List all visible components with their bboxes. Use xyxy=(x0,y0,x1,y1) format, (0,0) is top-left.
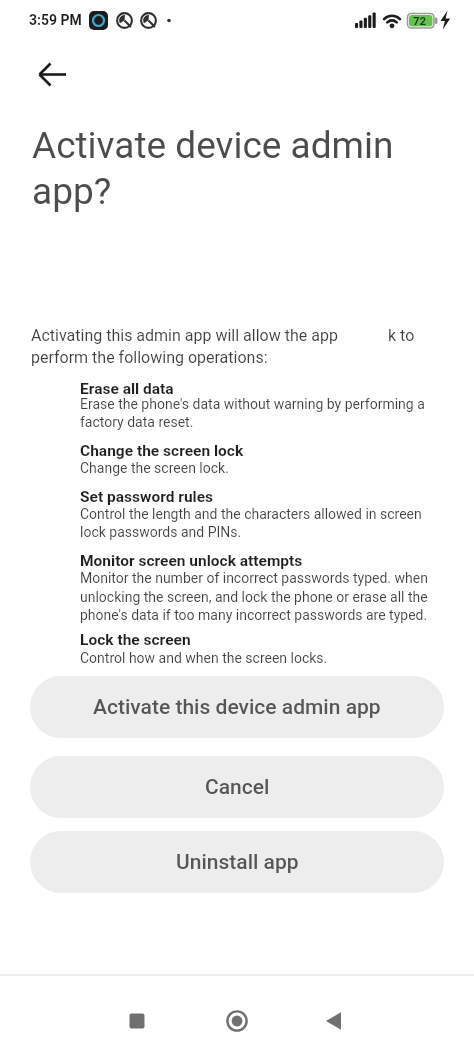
staticText: Erase all data xyxy=(80,380,174,398)
staticText: k to xyxy=(388,326,415,345)
staticText: Control the length and the characters al… xyxy=(80,506,422,541)
staticText: Uninstall app xyxy=(176,850,299,875)
staticText: 72 xyxy=(413,14,427,27)
button[interactable]: Activate this device admin app xyxy=(30,676,444,738)
staticText: Activating this admin app will allow the… xyxy=(31,326,338,345)
staticText: Lock the screen xyxy=(80,631,191,649)
staticText: Change the screen lock. xyxy=(80,460,229,476)
staticText: Set password rules xyxy=(80,488,214,506)
button[interactable] xyxy=(316,1004,350,1038)
staticText: Control how and when the screen locks. xyxy=(80,650,328,666)
staticText: Cancel xyxy=(205,775,270,800)
button[interactable] xyxy=(120,1004,154,1038)
staticText: Activate this device admin app xyxy=(93,695,381,720)
staticText: Activate device admin app? xyxy=(32,124,394,213)
staticText: Change the screen lock xyxy=(80,442,244,460)
staticText: Monitor screen unlock attempts xyxy=(80,552,303,570)
staticText: Monitor the number of incorrect password… xyxy=(80,570,428,623)
button[interactable] xyxy=(27,60,79,90)
staticText: perform the following operations: xyxy=(31,348,268,367)
staticText: 3:59 PM xyxy=(29,12,82,28)
button[interactable]: Cancel xyxy=(30,756,444,818)
button[interactable]: Uninstall app xyxy=(30,831,444,893)
staticText: Erase the phone's data without warning b… xyxy=(80,396,425,431)
button[interactable] xyxy=(220,1004,254,1038)
